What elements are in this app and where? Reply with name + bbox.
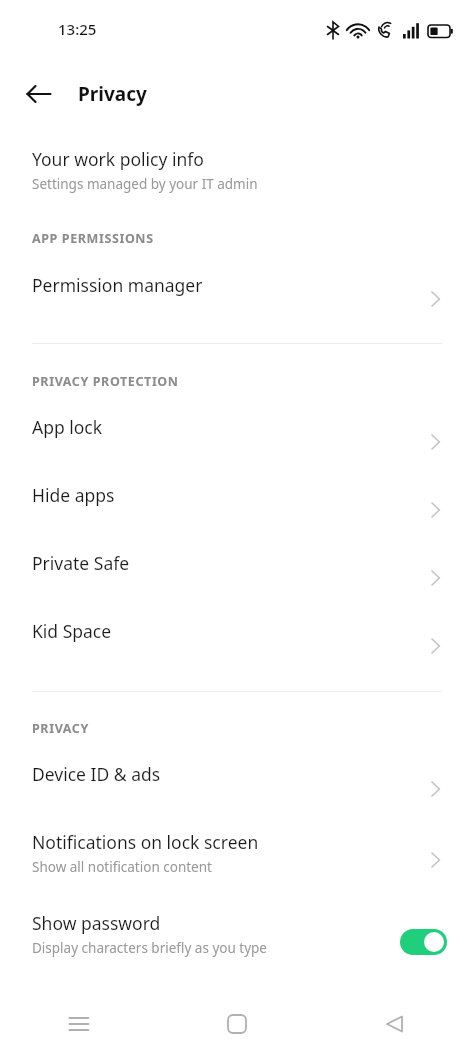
staticText: Hide apps: [32, 483, 115, 507]
button[interactable]: Show password toggle: [400, 929, 447, 955]
staticText: PRIVACY PROTECTION: [32, 373, 179, 390]
button[interactable]: App lock: [0, 414, 474, 470]
staticText: Display characters briefly as you type: [32, 939, 267, 957]
button[interactable]: Private Safe: [0, 550, 474, 606]
button[interactable]: Show password: [0, 910, 474, 974]
staticText: Settings managed by your IT admin: [32, 175, 258, 193]
staticText: PRIVACY: [32, 720, 89, 737]
staticText: Kid Space: [32, 619, 112, 643]
button[interactable]: Kid Space: [0, 618, 474, 674]
staticText: App lock: [32, 415, 103, 439]
staticText: Notifications on lock screen: [32, 830, 259, 854]
button[interactable]: Back: [18, 73, 60, 115]
button[interactable]: Back: [316, 995, 474, 1053]
button[interactable]: Permission manager: [0, 272, 474, 326]
staticText: Device ID & ads: [32, 762, 161, 786]
button[interactable]: Recents: [0, 995, 158, 1053]
staticText: Your work policy info: [32, 147, 204, 171]
button[interactable]: Your work policy info: [0, 146, 474, 208]
button[interactable]: Home: [158, 995, 316, 1053]
staticText: Private Safe: [32, 551, 130, 575]
staticText: 13:25: [58, 19, 97, 39]
button[interactable]: Device ID & ads: [0, 761, 474, 817]
staticText: Permission manager: [32, 273, 203, 297]
button[interactable]: Notifications on lock screen: [0, 829, 474, 891]
staticText: Show password: [32, 911, 161, 935]
staticText: APP PERMISSIONS: [32, 230, 154, 247]
button[interactable]: Hide apps: [0, 482, 474, 538]
staticText: Privacy: [78, 81, 147, 107]
staticText: Show all notification content: [32, 858, 212, 876]
